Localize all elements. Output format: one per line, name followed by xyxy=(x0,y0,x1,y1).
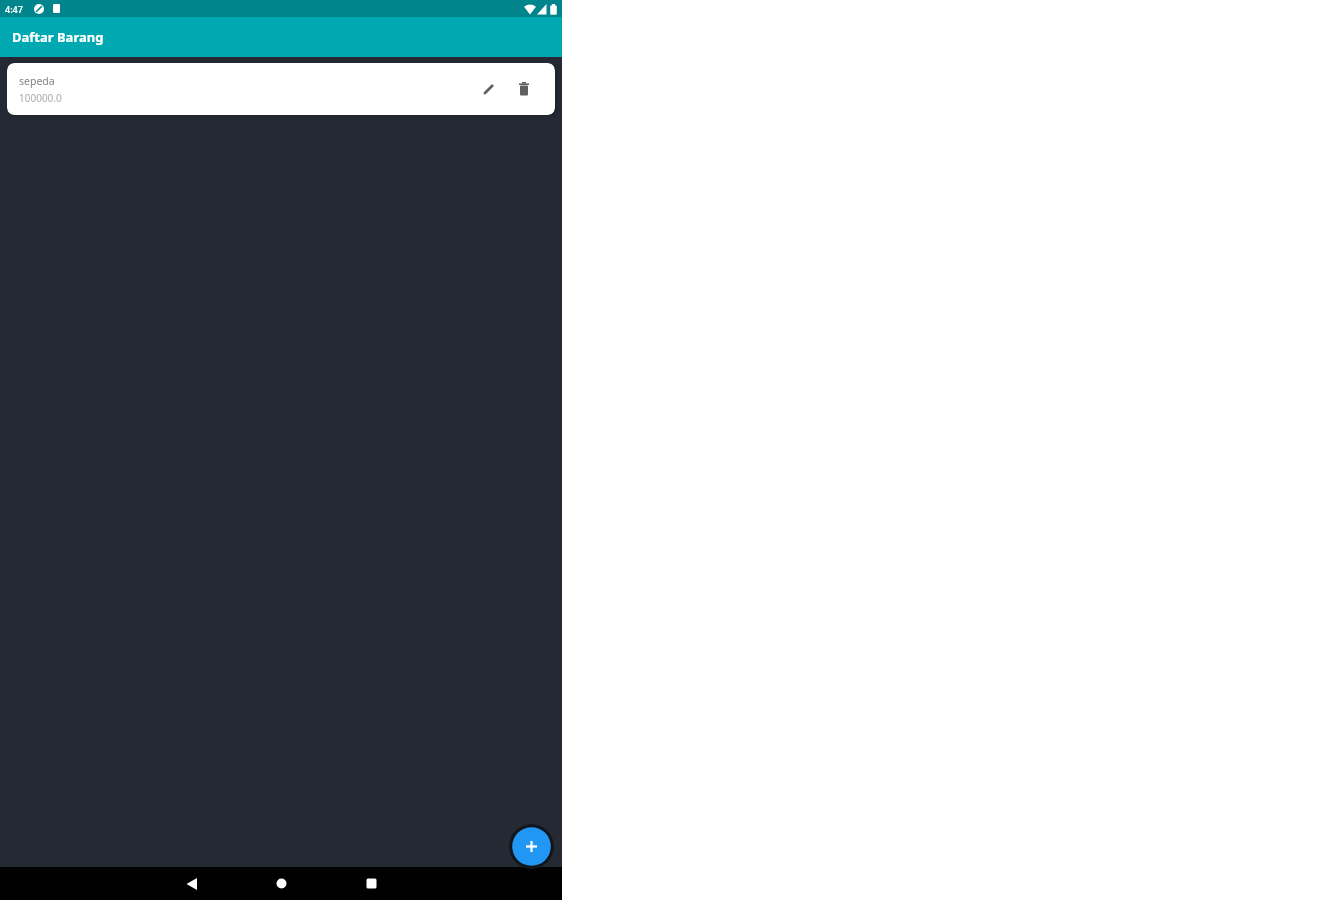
button[interactable] xyxy=(517,82,531,96)
button[interactable] xyxy=(366,878,377,889)
staticText: sepeda xyxy=(19,74,55,88)
staticText: 4:47 xyxy=(5,3,23,15)
button[interactable] xyxy=(276,878,287,889)
button[interactable]: sepeda xyxy=(7,63,555,115)
staticText: 100000.0 xyxy=(19,91,62,105)
staticText: Daftar Barang xyxy=(12,28,104,46)
button[interactable] xyxy=(482,82,496,96)
button[interactable] xyxy=(186,878,198,890)
button[interactable] xyxy=(509,824,554,869)
